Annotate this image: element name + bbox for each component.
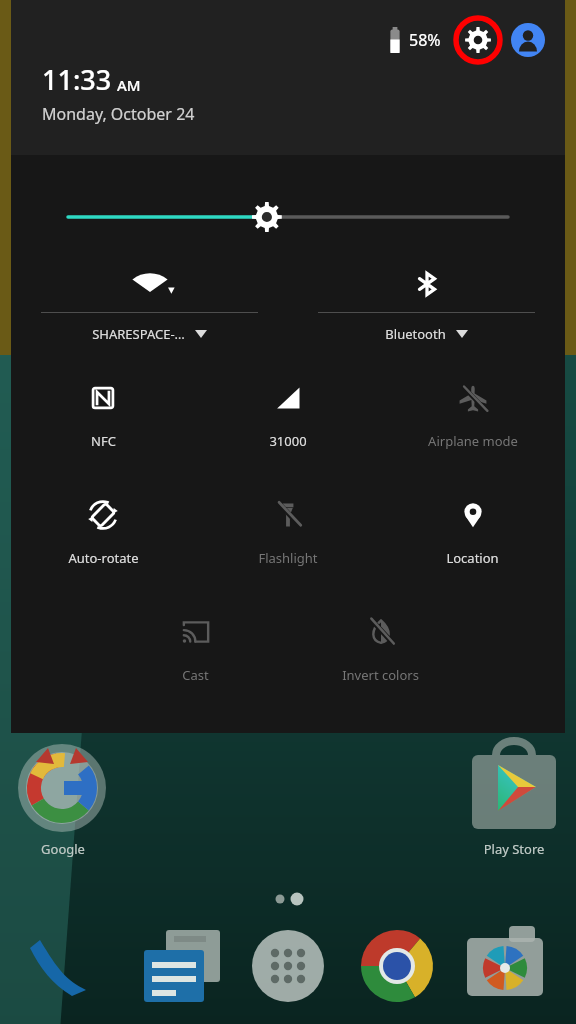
staticText: 11:33 (42, 61, 112, 98)
staticText: Location (446, 549, 499, 567)
staticText: Invert colors (342, 666, 419, 684)
staticText: Google (31, 840, 95, 858)
staticText: NFC (91, 432, 116, 450)
staticText: Bluetooth (385, 325, 446, 343)
button[interactable]: NFC (11, 357, 195, 474)
button[interactable]: Invert colors (288, 591, 473, 708)
button[interactable]: User account (511, 23, 545, 57)
staticText: AM (117, 75, 141, 95)
staticText: Monday, October 24 (42, 103, 195, 125)
button[interactable]: Settings (455, 17, 501, 63)
button[interactable]: Flashlight (195, 474, 380, 591)
staticText: Flashlight (258, 549, 318, 567)
button[interactable]: Cast (103, 591, 288, 708)
staticText: 58% (409, 29, 441, 51)
button[interactable]: Auto-rotate (11, 474, 195, 591)
staticText: Airplane mode (428, 432, 518, 450)
button[interactable]: SHARESPACE-… (11, 262, 288, 343)
button[interactable]: Location (380, 474, 565, 591)
staticText: SHARESPACE-… (92, 325, 185, 343)
staticText: 31000 (269, 432, 307, 450)
button[interactable]: Bluetooth (288, 262, 565, 343)
staticText: Auto-rotate (68, 549, 139, 567)
staticText: Play Store (466, 840, 562, 858)
button[interactable]: Brightness (11, 200, 565, 234)
staticText: Cast (182, 666, 209, 684)
button[interactable]: 31000 (195, 357, 380, 474)
button[interactable]: Airplane mode (380, 357, 565, 474)
